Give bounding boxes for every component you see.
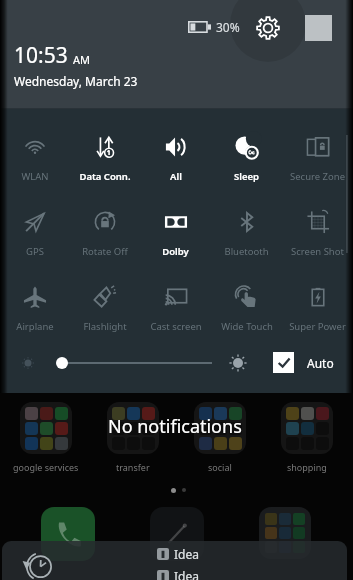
staticText: 30%	[216, 19, 240, 35]
button[interactable]: Wide Touch	[211, 259, 282, 334]
button[interactable]	[20, 402, 72, 454]
button[interactable]: Flashlight	[70, 259, 140, 334]
button[interactable]: Screen Shot	[282, 184, 353, 259]
staticText: All	[170, 170, 182, 183]
staticText: Flashlight	[83, 320, 127, 333]
staticText: WLAN	[21, 170, 49, 183]
button[interactable]: Sleep	[211, 109, 282, 184]
staticText: 10:53	[14, 41, 68, 70]
staticText: Bluetooth	[224, 245, 269, 258]
button[interactable]	[281, 402, 333, 454]
staticText: Super Power	[289, 320, 346, 333]
button[interactable]: Settings	[252, 12, 283, 43]
staticText: Cast screen	[150, 320, 202, 333]
button[interactable]: Apps	[259, 507, 311, 559]
staticText: No notifications	[108, 414, 242, 439]
button[interactable]: Cast screen	[140, 259, 211, 334]
staticText: GPS	[26, 245, 44, 258]
staticText: Sleep	[234, 170, 259, 183]
staticText: Secure Zone	[290, 170, 345, 183]
staticText: Idea	[174, 546, 199, 562]
button[interactable]: Super Power	[282, 259, 353, 334]
button[interactable]: Bluetooth	[211, 184, 282, 259]
staticText: Idea	[174, 568, 199, 580]
button[interactable]: Phone	[41, 507, 95, 561]
button[interactable]: WLAN	[0, 109, 70, 184]
staticText: Auto	[307, 355, 334, 371]
staticText: Wide Touch	[221, 320, 273, 333]
button[interactable]: Recent	[22, 550, 54, 580]
staticText: Dolby	[162, 245, 189, 258]
button[interactable]	[107, 402, 159, 454]
button[interactable]: Airplane	[0, 259, 70, 334]
button[interactable]: All	[140, 109, 211, 184]
button[interactable]	[194, 402, 246, 454]
staticText: transfer	[116, 461, 150, 473]
button[interactable]: Clock	[150, 507, 204, 561]
button[interactable]: Data Conn.	[70, 109, 140, 184]
button[interactable]: Brightness	[40, 350, 220, 376]
button[interactable]: Secure Zone	[282, 109, 353, 184]
staticText: Screen Shot	[291, 245, 344, 258]
staticText: Rotate Off	[82, 245, 128, 258]
staticText: Data Conn.	[79, 170, 131, 183]
staticText: social	[208, 461, 232, 473]
button[interactable]: Auto	[273, 352, 334, 373]
button[interactable]: GPS	[0, 184, 70, 259]
staticText: AM	[73, 52, 91, 67]
staticText: shopping	[287, 461, 327, 473]
button[interactable]: Rotate Off	[70, 184, 140, 259]
staticText: Airplane	[16, 320, 54, 333]
staticText: Wednesday, March 23	[14, 73, 138, 89]
button[interactable]: Dolby	[140, 184, 211, 259]
staticText: google services	[13, 461, 79, 473]
